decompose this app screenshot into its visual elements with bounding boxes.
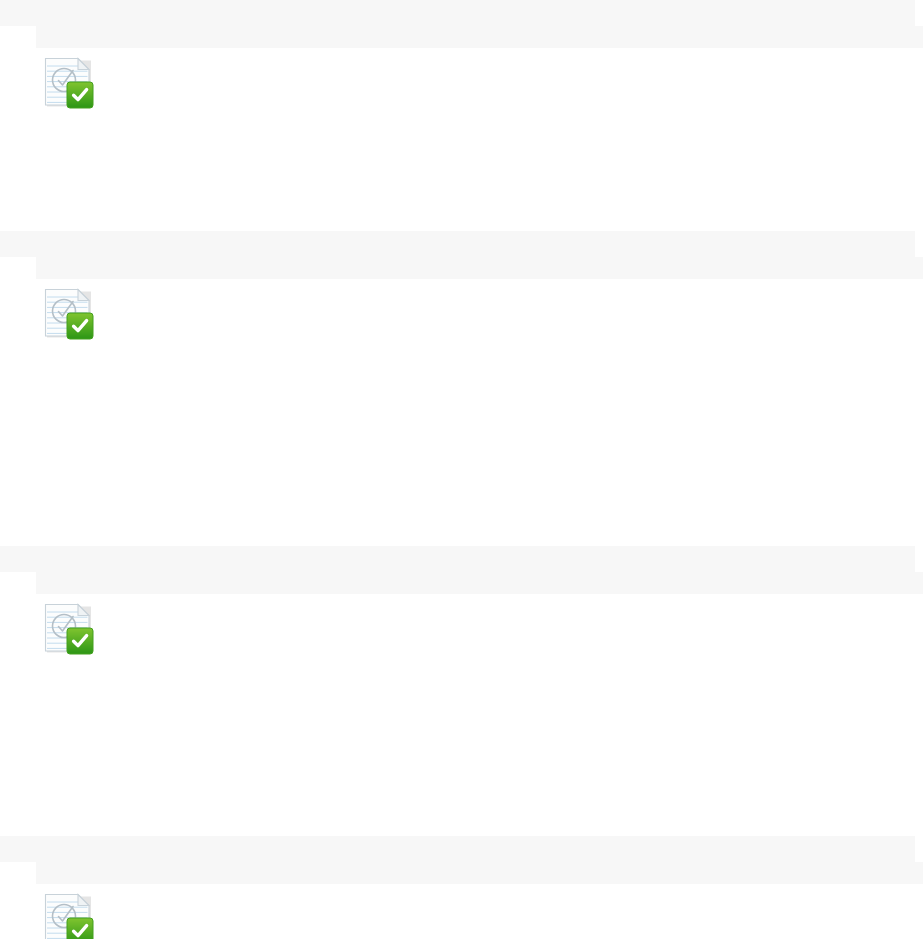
button[interactable]: Completed document: [43, 286, 95, 340]
button[interactable]: Completed document: [0, 594, 923, 836]
button[interactable]: Completed document: [0, 884, 923, 939]
button[interactable]: Completed document: [43, 891, 95, 939]
button[interactable]: Completed document: [0, 279, 923, 546]
button[interactable]: Completed document: [43, 601, 95, 655]
button[interactable]: Completed document: [43, 55, 95, 109]
button[interactable]: Completed document: [0, 48, 923, 231]
